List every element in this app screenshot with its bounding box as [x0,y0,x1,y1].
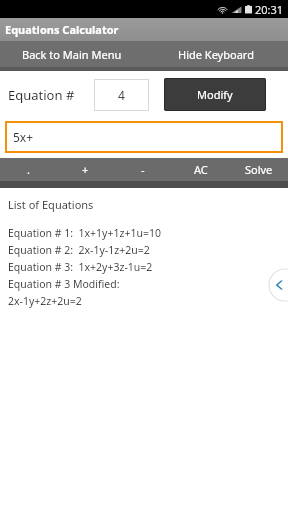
button[interactable]: . [0,158,57,181]
button[interactable]: 4 [94,79,149,111]
staticText: Hide Keyboard [178,47,254,62]
button[interactable]: Solve [230,158,288,181]
button[interactable]: Back to Main Menu [0,41,144,67]
staticText: Modify [197,87,233,102]
staticText: Back to Main Menu [22,47,122,62]
staticText: 4 [118,87,125,103]
staticText: 2x-1y+2z+2u=2 [8,294,82,308]
staticText: . [27,162,30,177]
button[interactable]: Hide Keyboard [144,41,288,67]
staticText: 5x+ [13,129,34,145]
staticText: - [141,162,145,177]
staticText: Equation # 1: 1x+1y+1z+1u=10 [8,226,161,240]
staticText: 20:31 [255,2,284,17]
staticText: List of Equations [8,197,94,212]
staticText: + [82,162,89,177]
button[interactable]: Open panel [268,268,288,302]
staticText: Equation # 2: 2x-1y-1z+2u=2 [8,243,150,257]
button[interactable]: + [57,158,114,181]
button[interactable]: 5x+ [5,121,283,153]
button[interactable]: Modify [164,78,266,111]
staticText: Equation # [8,86,75,104]
button[interactable]: - [114,158,172,181]
button[interactable]: AC [172,158,230,181]
staticText: Equation # 3: 1x+2y+3z-1u=2 [8,260,153,274]
staticText: Equations Calculator [5,22,119,37]
staticText: Solve [245,162,273,177]
staticText: Equation # 3 Modified: [8,277,120,291]
staticText: AC [194,162,208,177]
